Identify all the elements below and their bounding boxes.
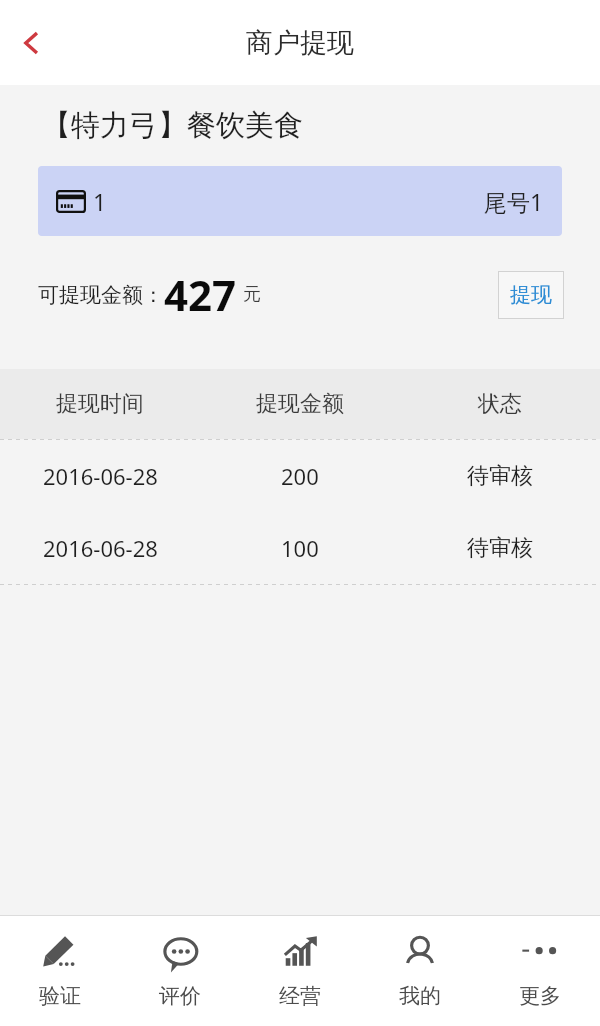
button[interactable]: 我的 [360,933,480,1009]
staticText: 2016-06-28 [43,461,158,491]
staticText: 验证 [39,983,81,1009]
staticText: 提现时间 [56,390,144,418]
staticText: 经营 [279,983,321,1009]
button[interactable]: 更多 [480,933,600,1009]
staticText: 【特力弓】餐饮美食 [42,107,303,144]
staticText: 更多 [519,983,561,1009]
staticText: 可提现金额： [38,282,164,308]
button[interactable]: Back [0,12,62,74]
staticText: 商户提现 [246,26,354,60]
staticText: 提现 [510,282,552,308]
staticText: 2016-06-28 [43,533,158,563]
button[interactable]: 评价 [120,933,240,1009]
staticText: 100 [281,533,319,563]
staticText: 评价 [159,983,201,1009]
button[interactable]: 验证 [0,933,120,1009]
staticText: 状态 [478,390,522,418]
staticText: 200 [281,461,319,491]
staticText: 427 [164,266,237,323]
staticText: 尾号1 [484,186,544,217]
staticText: 元 [243,283,261,306]
staticText: 1 [93,186,107,217]
button[interactable]: 提现 [498,271,564,319]
staticText: 提现金额 [256,390,344,418]
staticText: 我的 [399,983,441,1009]
button[interactable]: 2016-06-28 [0,440,600,512]
button[interactable]: 2016-06-28 [0,512,600,584]
staticText: 待审核 [467,462,533,490]
button[interactable]: 经营 [240,933,360,1009]
button[interactable]: 1 [38,166,562,236]
staticText: 待审核 [467,534,533,562]
